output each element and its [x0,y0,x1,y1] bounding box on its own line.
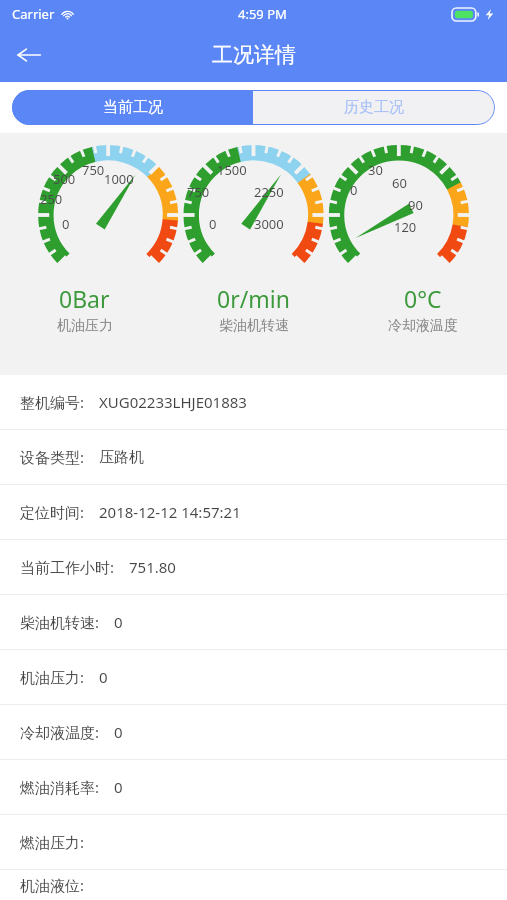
staticText: 机油液位: [20,875,85,895]
staticText: 751.80 [129,557,176,577]
button[interactable]: 定位时间: [0,485,507,540]
button[interactable]: 当前工况 [12,90,253,125]
staticText: 0 [209,215,217,233]
staticText: 0 [114,777,123,797]
staticText: Carrier [12,5,55,23]
staticText: 120 [394,218,417,236]
staticText: 250 [40,190,63,208]
staticText: 750 [187,183,210,201]
staticText: 2250 [254,183,284,201]
staticText: 柴油机转速: [20,612,100,632]
staticText: 历史工况 [344,98,404,117]
staticText: 0 [99,667,108,687]
staticText: 机油压力: [20,667,85,687]
staticText: 1000 [104,170,134,188]
staticText: 60 [392,174,407,192]
staticText: XUG02233LHJE01883 [99,392,247,412]
staticText: 0 [114,612,123,632]
staticText: 0r/min [217,283,290,314]
button[interactable]: 历史工况 [253,90,495,125]
staticText: 压路机 [99,448,144,467]
button[interactable]: 整机编号: [0,375,507,430]
staticText: 0 [62,215,70,233]
staticText: 0 [350,181,358,199]
button[interactable]: 冷却液温度: [0,705,507,760]
staticText: 燃油压力: [20,832,85,852]
staticText: 0 [114,722,123,742]
staticText: 冷却液温度: [20,722,100,742]
staticText: 整机编号: [20,392,85,412]
staticText: 燃油消耗率: [20,777,100,797]
button[interactable]: 当前工作小时: [0,540,507,595]
staticText: 4:59 PM [238,5,287,23]
staticText: 1500 [217,161,247,179]
staticText: 定位时间: [20,502,85,522]
staticText: 3000 [254,215,284,233]
button[interactable]: 燃油消耗率: [0,760,507,815]
button[interactable]: 设备类型: [0,430,507,485]
button[interactable]: Back [0,28,58,82]
button[interactable]: 柴油机转速: [0,595,507,650]
staticText: 2018-12-12 14:57:21 [99,502,241,522]
staticText: 0°C [404,283,442,314]
staticText: 30 [368,161,383,179]
staticText: 750 [82,161,105,179]
staticText: 冷却液温度 [388,317,458,335]
staticText: 当前工作小时: [20,557,115,577]
staticText: 90 [408,196,423,214]
staticText: 工况详情 [212,42,296,68]
staticText: 当前工况 [103,98,163,117]
staticText: 设备类型: [20,447,85,467]
button[interactable]: 燃油压力: [0,815,507,870]
button[interactable]: 机油液位: [0,870,507,900]
staticText: 机油压力 [57,317,113,335]
button[interactable]: 机油压力: [0,650,507,705]
staticText: 500 [53,170,76,188]
staticText: 0Bar [59,283,110,314]
staticText: 柴油机转速 [219,317,289,335]
